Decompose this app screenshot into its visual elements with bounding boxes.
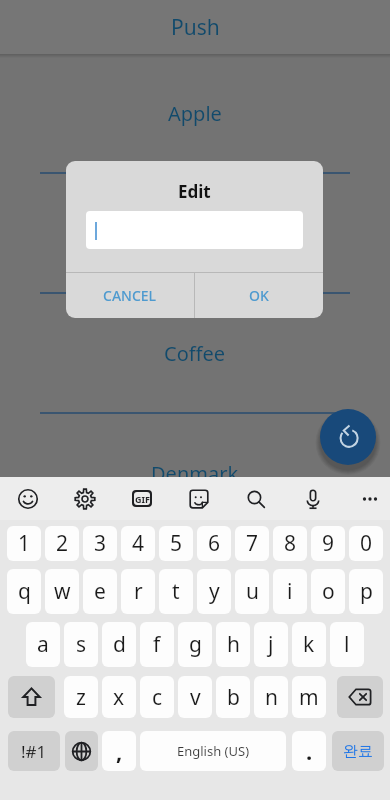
button[interactable]: Apple — [0, 54, 390, 174]
staticText: m — [299, 683, 319, 712]
staticText: r — [134, 577, 143, 606]
staticText: 0 — [360, 529, 373, 558]
button[interactable]: r — [121, 569, 155, 614]
staticText: h — [227, 630, 240, 659]
button[interactable]: , — [102, 731, 136, 771]
staticText: u — [246, 577, 259, 606]
button[interactable]: m — [292, 676, 326, 718]
staticText: 완료 — [343, 742, 373, 761]
button[interactable]: n — [254, 676, 288, 718]
staticText: 1 — [18, 529, 31, 558]
staticText: z — [76, 683, 86, 712]
staticText: 3 — [94, 529, 107, 558]
staticText: Push — [171, 13, 220, 42]
staticText: v — [190, 683, 201, 712]
staticText: Denmark — [151, 460, 239, 487]
button[interactable]: Voice input — [293, 477, 333, 520]
staticText: 6 — [208, 529, 221, 558]
button[interactable]: x — [102, 676, 136, 718]
staticText: c — [152, 683, 163, 712]
button[interactable]: Settings — [65, 477, 105, 520]
button[interactable]: t — [159, 569, 193, 614]
staticText: CANCEL — [103, 286, 157, 305]
staticText: i — [287, 577, 293, 606]
staticText: English (US) — [177, 742, 250, 760]
button[interactable]: Backspace — [337, 676, 383, 718]
button[interactable]: 0 — [349, 526, 383, 561]
staticText: o — [322, 577, 335, 606]
button[interactable]: w — [45, 569, 79, 614]
button[interactable]: Coffee — [0, 294, 390, 414]
button[interactable] — [86, 211, 303, 249]
staticText: GIF — [135, 493, 150, 505]
button[interactable]: Change language — [65, 731, 98, 771]
staticText: Coffee — [164, 340, 226, 367]
button[interactable]: English (US) — [140, 731, 286, 771]
staticText: 9 — [322, 529, 335, 558]
button[interactable]: Emoji — [8, 477, 48, 520]
staticText: f — [153, 630, 161, 659]
staticText: 2 — [56, 529, 69, 558]
staticText: y — [209, 577, 220, 606]
button[interactable]: 7 — [235, 526, 269, 561]
button[interactable]: 9 — [311, 526, 345, 561]
button[interactable]: a — [26, 622, 60, 667]
button[interactable]: u — [235, 569, 269, 614]
button[interactable]: v — [178, 676, 212, 718]
button[interactable]: o — [311, 569, 345, 614]
button[interactable]: c — [140, 676, 174, 718]
staticText: w — [54, 577, 71, 606]
button[interactable]: Shift — [8, 676, 55, 718]
staticText: b — [227, 683, 240, 712]
staticText: 4 — [132, 529, 145, 558]
button[interactable]: Refresh — [320, 409, 376, 465]
button[interactable]: s — [64, 622, 98, 667]
staticText: , — [116, 736, 123, 766]
button[interactable]: 3 — [83, 526, 117, 561]
staticText: !#1 — [21, 740, 47, 763]
button[interactable]: !#1 — [8, 731, 60, 771]
staticText: Edit — [178, 180, 211, 203]
button[interactable]: b — [216, 676, 250, 718]
button[interactable]: 2 — [45, 526, 79, 561]
staticText: s — [76, 630, 87, 659]
button[interactable]: Denmark — [0, 414, 390, 534]
button[interactable]: More — [350, 477, 390, 520]
staticText: q — [18, 577, 31, 606]
button[interactable]: GIF — [122, 477, 162, 520]
button[interactable]: p — [349, 569, 383, 614]
staticText: 5 — [170, 529, 183, 558]
staticText: t — [172, 577, 180, 606]
button[interactable]: 완료 — [332, 731, 384, 771]
button[interactable]: Search — [236, 477, 276, 520]
button[interactable]: d — [102, 622, 136, 667]
button[interactable]: q — [7, 569, 41, 614]
button[interactable]: Stickers — [179, 477, 219, 520]
staticText: x — [113, 683, 125, 712]
button[interactable]: 4 — [121, 526, 155, 561]
button[interactable]: f — [140, 622, 174, 667]
button[interactable]: j — [254, 622, 288, 667]
button[interactable]: 6 — [197, 526, 231, 561]
button[interactable]: Banana — [0, 174, 390, 294]
button[interactable]: 8 — [273, 526, 307, 561]
button[interactable]: OK — [195, 273, 323, 318]
button[interactable]: k — [292, 622, 326, 667]
staticText: a — [37, 630, 49, 659]
staticText: j — [268, 630, 274, 659]
button[interactable]: z — [64, 676, 98, 718]
staticText: d — [113, 630, 126, 659]
button[interactable]: 5 — [159, 526, 193, 561]
staticText: OK — [249, 286, 269, 305]
button[interactable]: e — [83, 569, 117, 614]
button[interactable]: CANCEL — [66, 273, 194, 318]
button[interactable]: y — [197, 569, 231, 614]
button[interactable]: i — [273, 569, 307, 614]
button[interactable]: . — [292, 731, 326, 771]
button[interactable]: g — [178, 622, 212, 667]
staticText: n — [265, 683, 278, 712]
button[interactable]: 1 — [7, 526, 41, 561]
button[interactable]: h — [216, 622, 250, 667]
button[interactable]: l — [330, 622, 364, 667]
